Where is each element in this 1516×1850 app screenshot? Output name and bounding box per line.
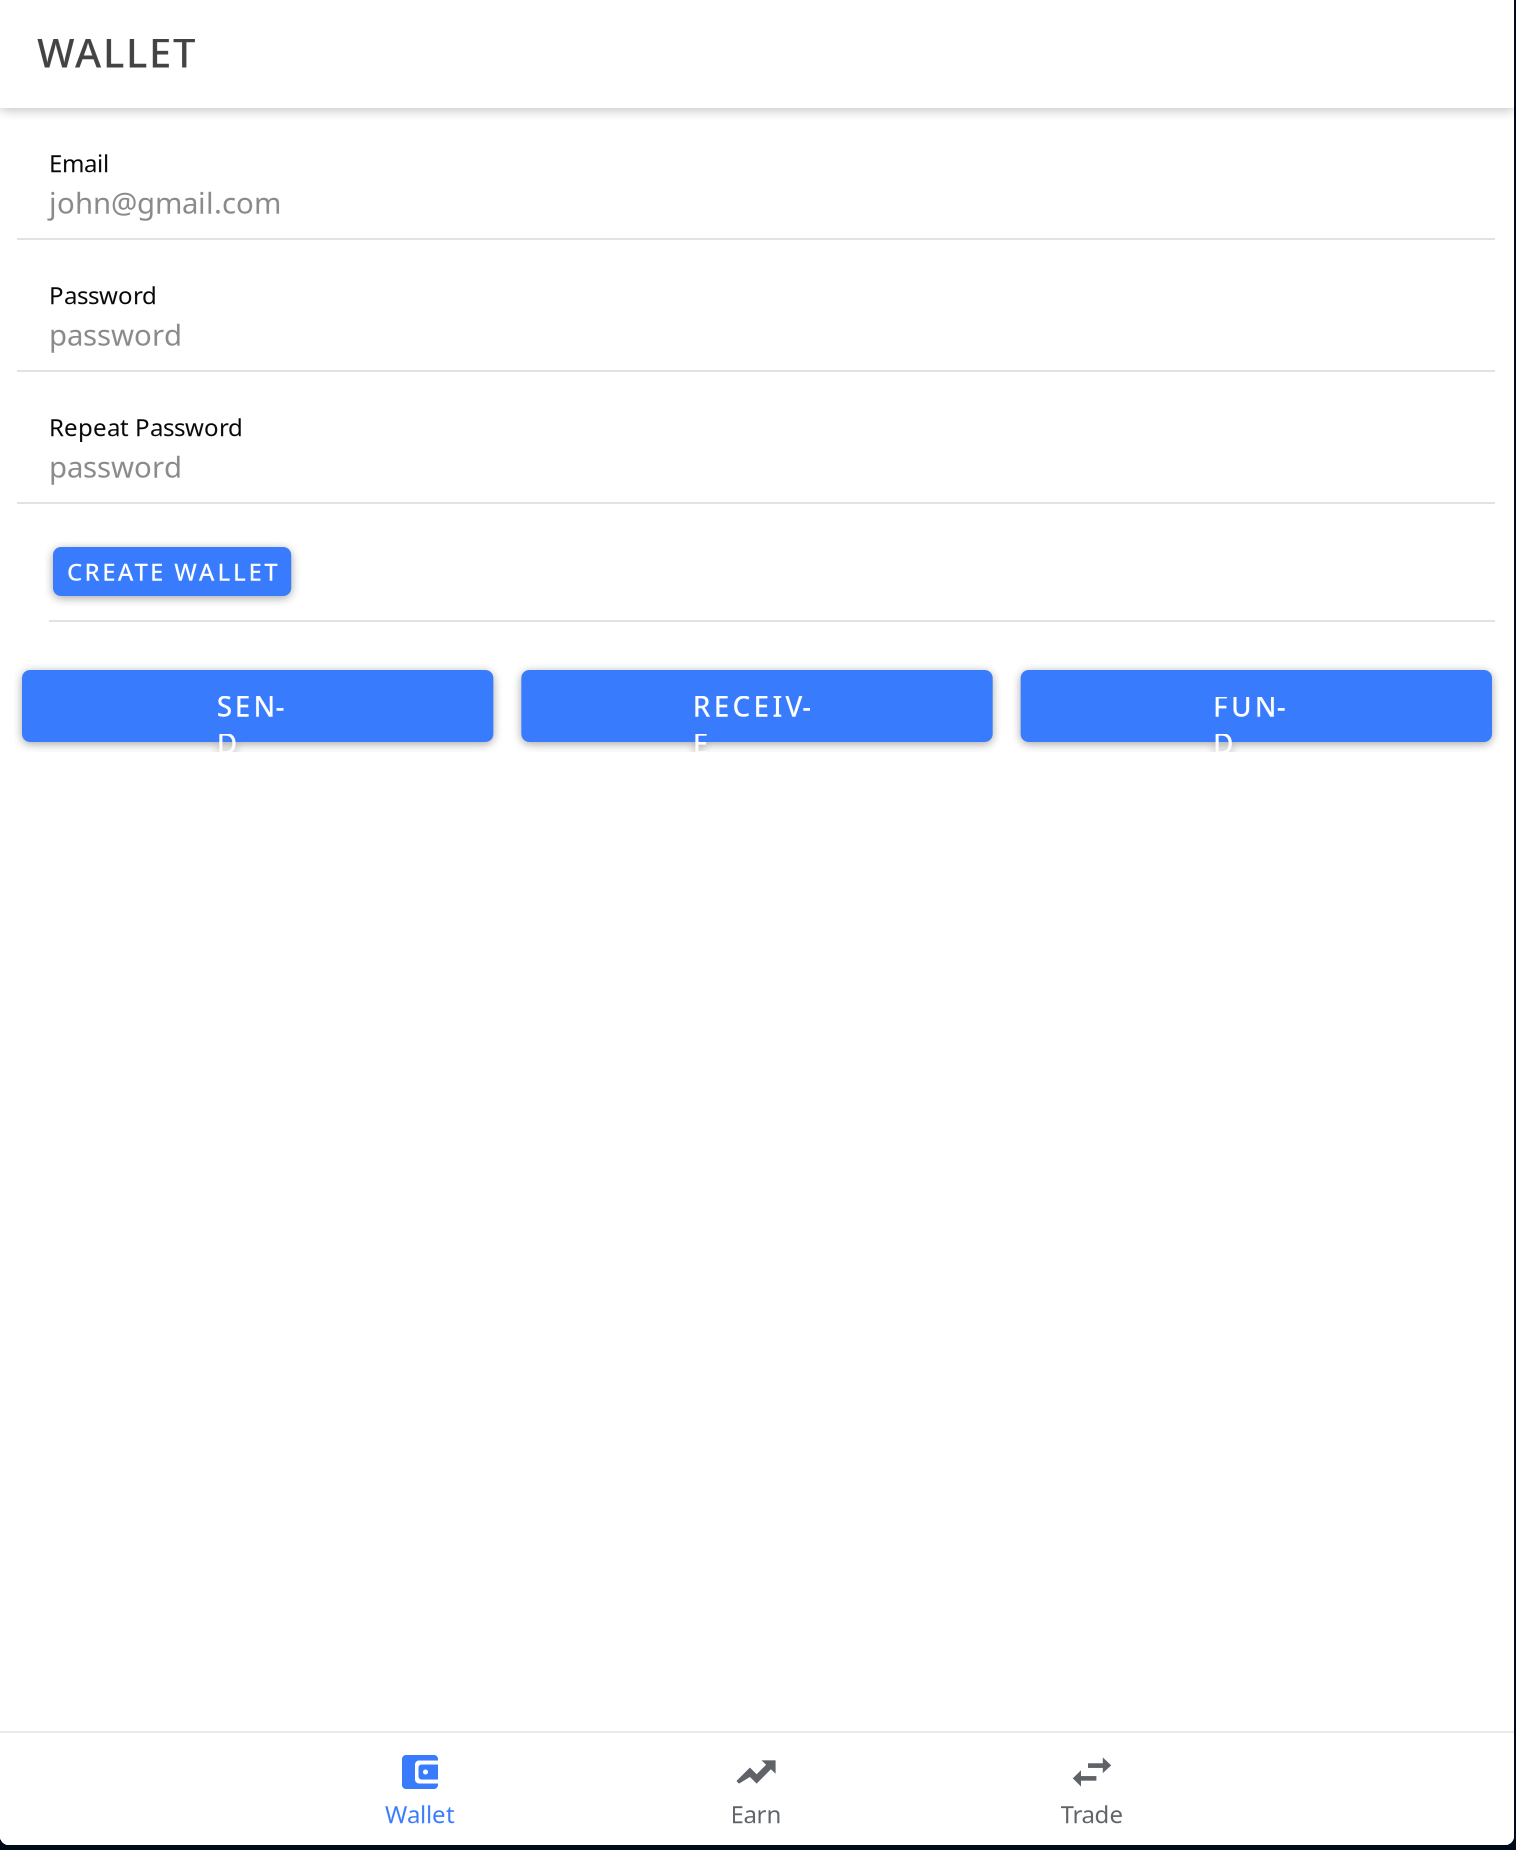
button[interactable]: Email — [0, 108, 1514, 240]
staticText: password — [49, 315, 182, 354]
staticText: SEND — [217, 687, 298, 725]
button[interactable]: Repeat Password — [0, 372, 1514, 504]
staticText: password — [49, 447, 182, 486]
button[interactable]: Password — [0, 240, 1514, 372]
staticText: john@gmail.com — [49, 183, 281, 222]
staticText: Trade — [1060, 1798, 1123, 1830]
staticText: FUND — [1213, 687, 1300, 725]
staticText: Repeat Password — [49, 411, 243, 443]
staticText: Wallet — [385, 1798, 455, 1830]
button[interactable]: Trade — [924, 1733, 1260, 1845]
button[interactable]: CREATE WALLET — [53, 547, 291, 596]
staticText: CREATE WALLET — [67, 556, 277, 587]
button[interactable]: RECEIVE — [521, 670, 993, 742]
button[interactable]: Earn — [588, 1733, 924, 1845]
staticText: RECEIVE — [693, 687, 821, 725]
button[interactable]: FUND — [1021, 670, 1492, 742]
staticText: Password — [49, 279, 157, 311]
staticText: WALLET — [37, 25, 195, 78]
button[interactable]: SEND — [22, 670, 493, 742]
staticText: Earn — [730, 1798, 781, 1830]
button[interactable]: Wallet — [252, 1733, 588, 1845]
staticText: Email — [49, 147, 109, 179]
